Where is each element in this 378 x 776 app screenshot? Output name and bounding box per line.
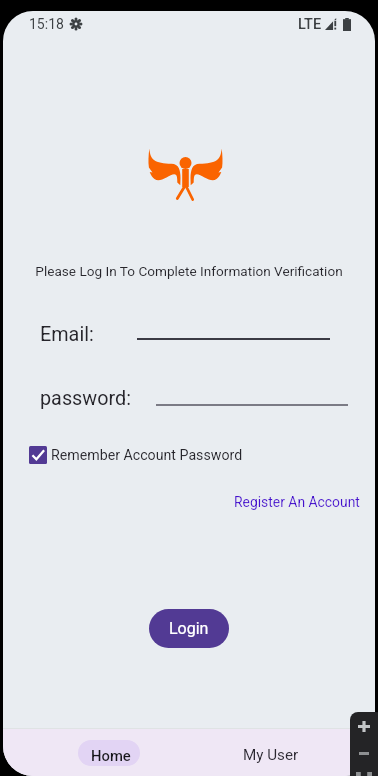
- other: More: [356, 772, 372, 776]
- button[interactable]: Remember Account Password: [29, 446, 243, 464]
- button[interactable]: Zoom in: [358, 721, 370, 732]
- staticText: password:: [40, 387, 131, 410]
- staticText: Home: [91, 747, 131, 764]
- button[interactable]: Home: [78, 740, 140, 766]
- staticText: Remember Account Password: [51, 447, 243, 464]
- staticText: Please Log In To Complete Information Ve…: [35, 263, 343, 279]
- staticText: Login: [169, 619, 209, 638]
- button[interactable]: Register An Account: [234, 494, 360, 510]
- button[interactable]: Login: [149, 609, 229, 648]
- staticText: Email:: [40, 323, 94, 346]
- staticText: LTE: [298, 16, 322, 33]
- button[interactable]: My User: [238, 740, 300, 766]
- staticText: 15:18: [29, 16, 64, 32]
- staticText: My User: [243, 746, 299, 764]
